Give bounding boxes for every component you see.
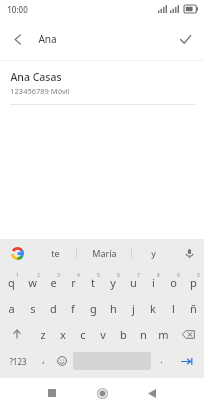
button[interactable]: a xyxy=(1,295,22,321)
button[interactable]: Google xyxy=(0,239,34,267)
button[interactable]: c xyxy=(73,321,93,347)
staticText: g xyxy=(90,301,97,316)
button[interactable]: María xyxy=(77,239,131,267)
button[interactable]: v xyxy=(93,321,113,347)
button[interactable]: q xyxy=(1,269,22,295)
button[interactable]: Voice input xyxy=(174,239,204,267)
staticText: , xyxy=(42,353,45,365)
button[interactable]: f xyxy=(63,295,83,321)
button[interactable]: Back xyxy=(0,21,36,57)
button[interactable]: n xyxy=(133,321,153,347)
button[interactable]: Confirm xyxy=(166,20,204,58)
button[interactable]: Recents xyxy=(27,378,77,408)
button[interactable]: Next xyxy=(170,347,203,375)
button[interactable]: w xyxy=(22,269,43,295)
button[interactable]: Emoji xyxy=(52,347,71,375)
staticText: w xyxy=(28,275,37,290)
staticText: h xyxy=(110,301,117,316)
button[interactable]: Back xyxy=(127,378,177,408)
button[interactable]: Home xyxy=(77,378,127,408)
button[interactable]: . xyxy=(153,347,170,375)
staticText: Ana Casas xyxy=(10,70,62,84)
staticText: te xyxy=(51,247,60,259)
button[interactable]: t xyxy=(83,269,103,295)
button[interactable]: e xyxy=(43,269,63,295)
button[interactable]: d xyxy=(43,295,63,321)
staticText: 6 xyxy=(117,272,120,279)
button[interactable]: z xyxy=(32,321,53,347)
staticText: 4 xyxy=(77,272,80,279)
button[interactable]: p xyxy=(183,269,203,295)
button[interactable]: Ana xyxy=(36,18,166,60)
staticText: t xyxy=(91,275,95,290)
staticText: f xyxy=(71,301,75,316)
staticText: 9 xyxy=(177,272,180,279)
button[interactable]: ?123 xyxy=(1,347,35,375)
staticText: Ana xyxy=(38,32,57,46)
button[interactable]: Backspace xyxy=(173,321,203,347)
staticText: 3 xyxy=(57,272,60,279)
button[interactable]: g xyxy=(83,295,103,321)
staticText: 5 xyxy=(97,272,100,279)
staticText: María xyxy=(92,247,117,259)
button[interactable]: u xyxy=(123,269,143,295)
button[interactable]: s xyxy=(22,295,43,321)
button[interactable]: o xyxy=(163,269,183,295)
staticText: y xyxy=(110,275,116,290)
staticText: n xyxy=(140,327,147,342)
button[interactable]: b xyxy=(113,321,133,347)
staticText: k xyxy=(150,301,156,316)
button[interactable]: ñ xyxy=(183,295,203,321)
staticText: 8 xyxy=(157,272,160,279)
button[interactable]: y xyxy=(132,239,174,267)
button[interactable]: x xyxy=(53,321,73,347)
staticText: u xyxy=(130,275,137,290)
button[interactable]: , xyxy=(35,347,52,375)
button[interactable]: j xyxy=(123,295,143,321)
staticText: 0 xyxy=(197,272,200,279)
staticText: d xyxy=(50,301,57,316)
button[interactable]: Ana Casas xyxy=(0,61,204,105)
staticText: b xyxy=(120,327,127,342)
staticText: e xyxy=(50,275,57,290)
staticText: l xyxy=(172,301,175,316)
staticText: i xyxy=(152,275,155,290)
staticText: 7 xyxy=(137,272,140,279)
staticText: ñ xyxy=(190,301,197,316)
staticText: a xyxy=(8,301,15,316)
staticText: 10:00 xyxy=(7,4,28,15)
staticText: j xyxy=(132,301,135,316)
button[interactable]: i xyxy=(143,269,163,295)
button[interactable]: l xyxy=(163,295,183,321)
staticText: r xyxy=(71,275,76,290)
staticText: s xyxy=(30,301,36,316)
button[interactable]: m xyxy=(153,321,173,347)
staticText: z xyxy=(40,327,46,342)
staticText: x xyxy=(60,327,66,342)
button[interactable]: y xyxy=(103,269,123,295)
button[interactable]: h xyxy=(103,295,123,321)
staticText: y xyxy=(151,247,156,259)
staticText: v xyxy=(100,327,106,342)
staticText: p xyxy=(190,275,197,290)
button[interactable]: Shift xyxy=(1,321,32,347)
staticText: ?123 xyxy=(9,356,27,367)
button[interactable]: r xyxy=(63,269,83,295)
staticText: o xyxy=(170,275,177,290)
staticText: 2 xyxy=(37,272,40,279)
staticText: m xyxy=(158,327,169,342)
button[interactable]: te xyxy=(34,239,76,267)
staticText: 123456789 Móvil xyxy=(10,86,70,96)
staticText: . xyxy=(160,353,163,365)
staticText: 1 xyxy=(16,272,19,279)
staticText: c xyxy=(80,327,86,342)
staticText: q xyxy=(8,275,15,290)
button[interactable]: k xyxy=(143,295,163,321)
